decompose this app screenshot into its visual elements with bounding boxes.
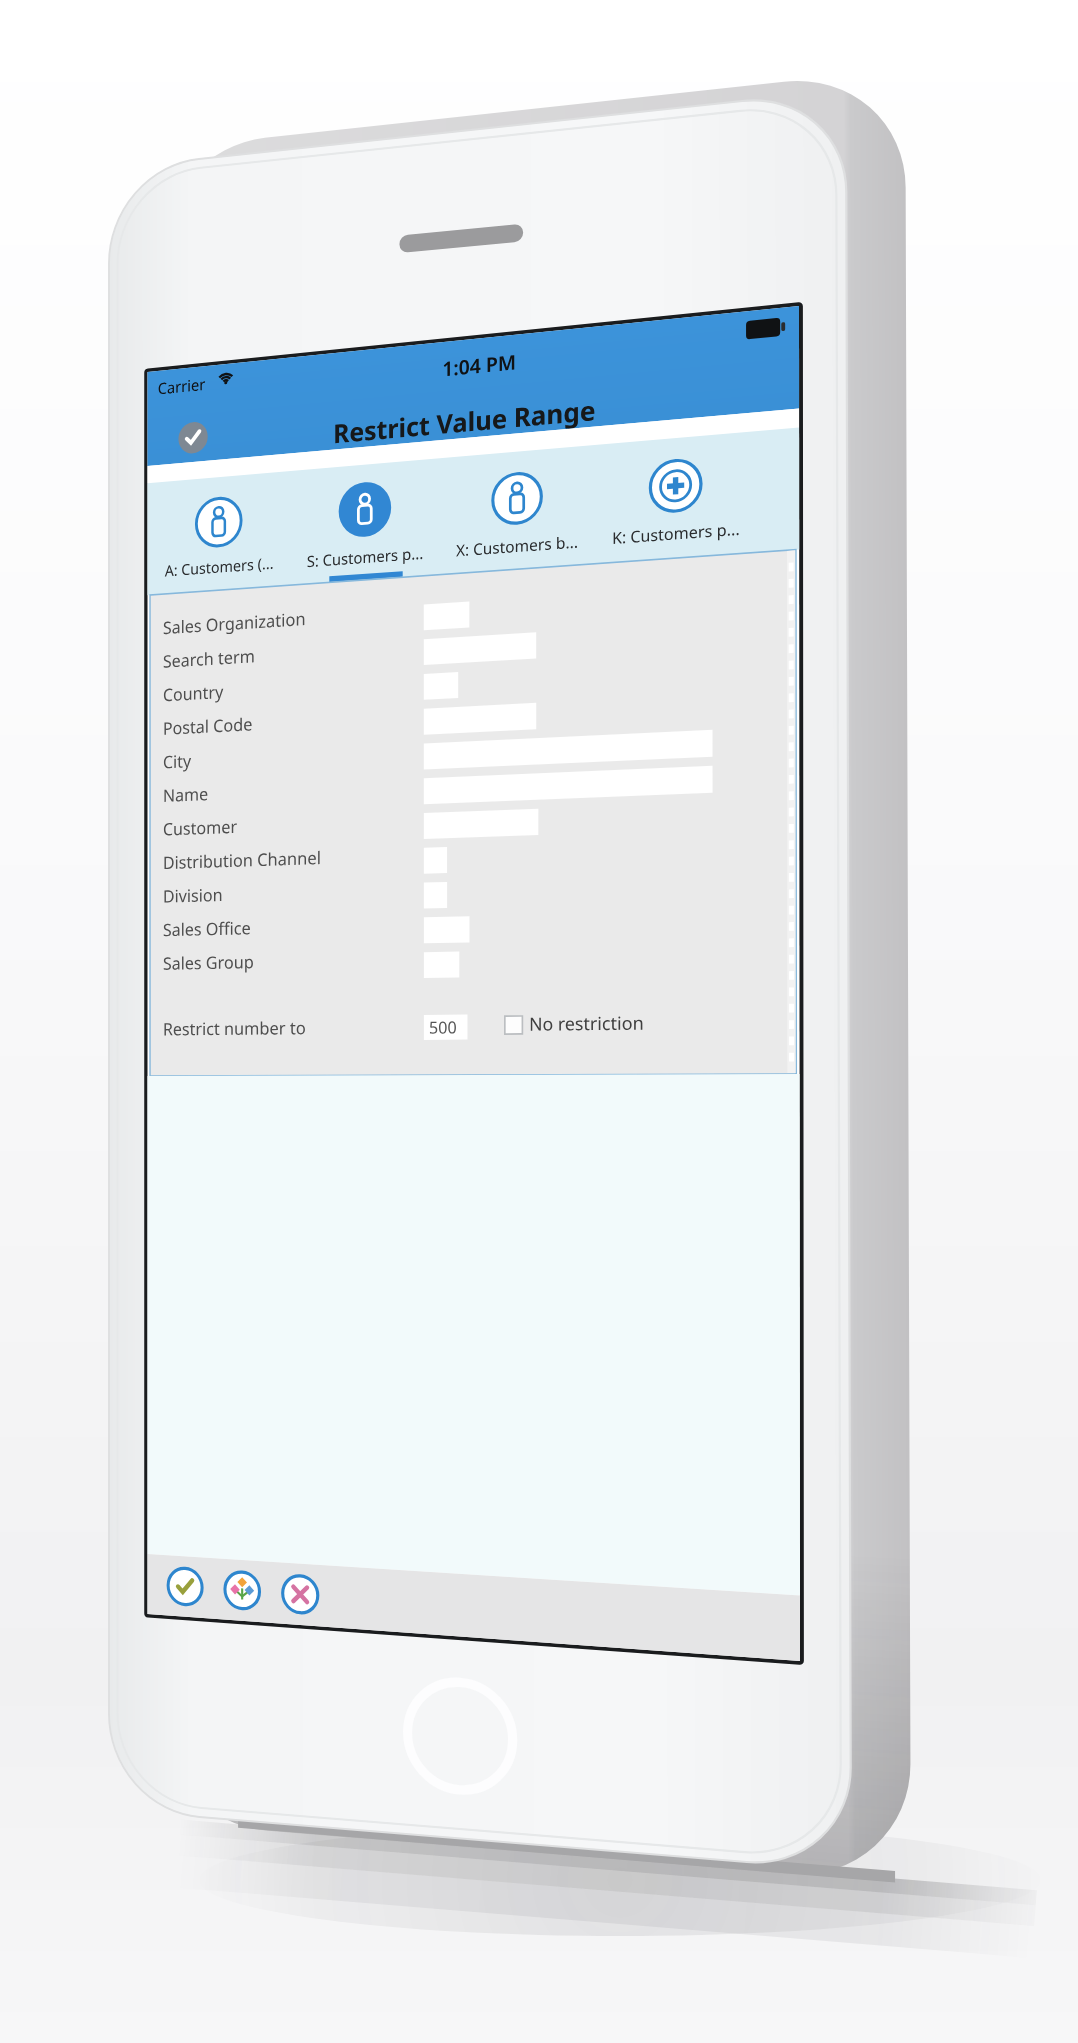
button[interactable]: [163, 1565, 207, 1609]
button[interactable]: [403, 1679, 517, 1793]
button[interactable]: [424, 896, 471, 923]
button[interactable]: [503, 1010, 643, 1038]
button[interactable]: [424, 722, 713, 749]
button[interactable]: [424, 584, 471, 611]
button[interactable]: [313, 469, 476, 591]
button[interactable]: [424, 688, 537, 715]
button[interactable]: [639, 437, 802, 559]
button[interactable]: [150, 485, 313, 607]
button[interactable]: [278, 1573, 322, 1617]
button[interactable]: [424, 653, 459, 680]
button[interactable]: [424, 931, 460, 958]
button[interactable]: [424, 618, 537, 645]
button[interactable]: [424, 861, 448, 888]
button[interactable]: [178, 422, 210, 454]
button[interactable]: [424, 826, 448, 853]
button[interactable]: [424, 1013, 470, 1041]
button[interactable]: [476, 453, 639, 575]
button[interactable]: [424, 792, 539, 819]
button[interactable]: [220, 1567, 264, 1611]
button[interactable]: [424, 757, 713, 784]
